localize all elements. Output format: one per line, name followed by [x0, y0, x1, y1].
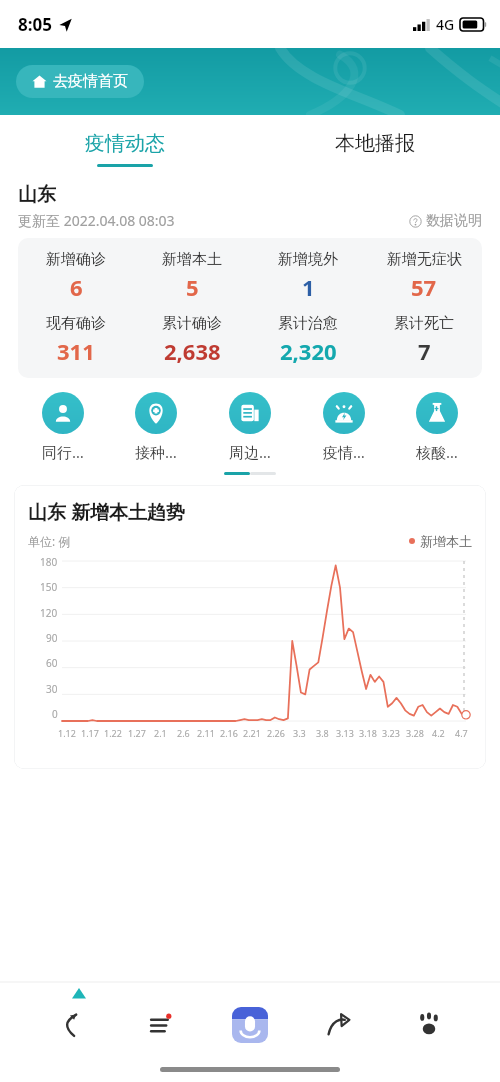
- button[interactable]: 新增无症状: [366, 250, 482, 302]
- staticText: 4.2: [432, 727, 445, 739]
- staticText: 新增无症状: [387, 250, 462, 269]
- button[interactable]: 山东 新增本土趋势: [14, 485, 486, 769]
- staticText: 90: [46, 631, 58, 645]
- button[interactable]: 本地播报: [250, 115, 500, 183]
- staticText: 3.23: [382, 727, 400, 739]
- button[interactable]: 数据说明: [409, 212, 482, 230]
- staticText: 核酸…: [416, 442, 458, 462]
- staticText: 累计确诊: [162, 314, 222, 333]
- button[interactable]: 新增确诊: [18, 250, 134, 302]
- staticText: 3.13: [336, 727, 354, 739]
- button[interactable]: 同行…: [22, 392, 104, 462]
- staticText: 同行…: [42, 442, 84, 462]
- staticText: 2.26: [267, 727, 285, 739]
- staticText: 1.17: [81, 727, 99, 739]
- button[interactable]: Voice search: [232, 1007, 268, 1043]
- staticText: 去疫情首页: [53, 72, 128, 91]
- button[interactable]: Menu: [142, 1006, 180, 1044]
- staticText: 2.6: [177, 727, 190, 739]
- staticText: 120: [40, 606, 58, 620]
- other: 接种…: [135, 392, 177, 434]
- other: 同行…: [42, 392, 84, 434]
- staticText: 累计死亡: [394, 314, 454, 333]
- staticText: 8:05: [18, 13, 52, 36]
- staticText: 0: [52, 707, 58, 721]
- staticText: 周边…: [229, 442, 271, 462]
- staticText: 新增本土: [420, 533, 472, 549]
- staticText: 1.12: [58, 727, 76, 739]
- staticText: 山东 新增本土趋势: [28, 499, 185, 525]
- button[interactable]: Back: [52, 1006, 90, 1044]
- staticText: 1.27: [128, 727, 146, 739]
- staticText: 2.21: [243, 727, 261, 739]
- staticText: 更新至 2022.04.08 08:03: [18, 211, 175, 230]
- staticText: 5: [186, 272, 199, 302]
- other: 核酸…: [416, 392, 458, 434]
- button[interactable]: Share: [320, 1006, 358, 1044]
- staticText: 2.16: [220, 727, 238, 739]
- staticText: 4G: [436, 15, 455, 34]
- staticText: 4.7: [455, 727, 468, 739]
- staticText: 接种…: [135, 442, 177, 462]
- staticText: 山东: [18, 183, 56, 207]
- button[interactable]: Baidu: [410, 1006, 448, 1044]
- staticText: 3.3: [293, 727, 306, 739]
- button[interactable]: 接种…: [115, 392, 197, 462]
- staticText: 2.1: [154, 727, 167, 739]
- staticText: 新增本土: [162, 250, 222, 269]
- staticText: 3.8: [316, 727, 329, 739]
- button[interactable]: 累计治愈: [250, 314, 366, 366]
- staticText: 311: [57, 336, 95, 366]
- button[interactable]: 去疫情首页: [16, 65, 144, 98]
- staticText: 新增境外: [278, 250, 338, 269]
- button[interactable]: 累计死亡: [366, 314, 482, 366]
- staticText: 2.11: [197, 727, 215, 739]
- staticText: 180: [40, 555, 58, 569]
- button[interactable]: 累计确诊: [134, 314, 250, 366]
- staticText: 现有确诊: [46, 314, 106, 333]
- staticText: 疫情…: [323, 442, 365, 462]
- button[interactable]: 核酸…: [396, 392, 478, 462]
- button[interactable]: 周边…: [209, 392, 291, 462]
- staticText: 2,638: [164, 336, 221, 366]
- staticText: 30: [46, 682, 58, 696]
- other: 疫情…: [323, 392, 365, 434]
- button[interactable]: 疫情…: [303, 392, 385, 462]
- staticText: 1.22: [104, 727, 122, 739]
- button[interactable]: 疫情动态: [0, 115, 250, 183]
- staticText: 3.28: [406, 727, 424, 739]
- staticText: 1: [302, 272, 315, 302]
- staticText: 本地播报: [335, 131, 415, 156]
- staticText: 7: [418, 336, 431, 366]
- staticText: 150: [40, 580, 58, 594]
- staticText: 2,320: [280, 336, 337, 366]
- button[interactable]: 现有确诊: [18, 314, 134, 366]
- button[interactable]: 新增本土: [134, 250, 250, 302]
- staticText: 单位: 例: [28, 533, 71, 549]
- button[interactable]: 新增境外: [250, 250, 366, 302]
- staticText: 60: [46, 656, 58, 670]
- staticText: 3.18: [359, 727, 377, 739]
- staticText: 57: [411, 272, 437, 302]
- staticText: 累计治愈: [278, 314, 338, 333]
- other: 周边…: [229, 392, 271, 434]
- staticText: 疫情动态: [85, 131, 165, 156]
- staticText: 新增确诊: [46, 250, 106, 269]
- staticText: 6: [70, 272, 83, 302]
- staticText: 数据说明: [426, 212, 482, 230]
